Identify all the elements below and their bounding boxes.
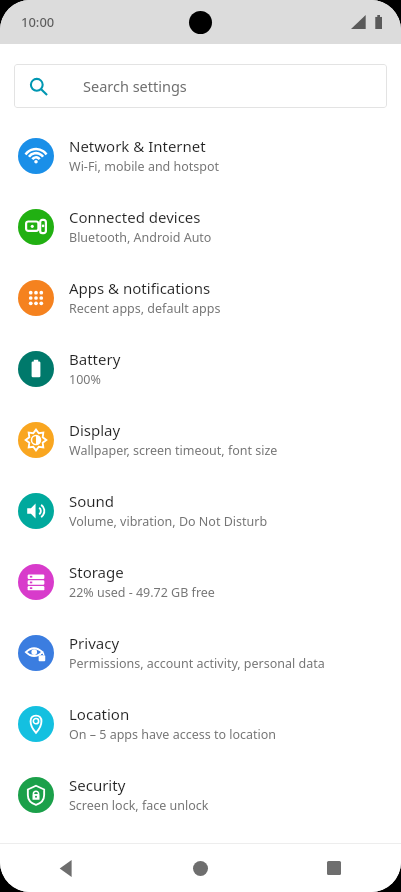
staticText: Storage xyxy=(69,562,124,582)
staticText: Screen lock, face unlock xyxy=(69,797,209,814)
button[interactable]: Back xyxy=(0,844,133,892)
staticText: Display xyxy=(69,420,121,440)
staticText: Privacy xyxy=(69,633,120,653)
staticText: Battery xyxy=(69,349,121,369)
button[interactable]: Sound xyxy=(0,475,401,546)
button[interactable]: Search settings xyxy=(14,64,387,108)
button[interactable]: Home xyxy=(133,844,267,892)
button[interactable]: Connected devices xyxy=(0,191,401,262)
button[interactable]: Network & Internet xyxy=(0,120,401,191)
staticText: Search settings xyxy=(83,76,187,96)
button[interactable]: Display xyxy=(0,404,401,475)
button[interactable]: Security xyxy=(0,759,401,830)
button[interactable]: Battery xyxy=(0,333,401,404)
staticText: Connected devices xyxy=(69,207,201,227)
button[interactable]: Location xyxy=(0,688,401,759)
button[interactable]: Storage xyxy=(0,546,401,617)
staticText: Location xyxy=(69,704,130,724)
staticText: Sound xyxy=(69,491,115,511)
staticText: Recent apps, default apps xyxy=(69,300,221,317)
staticText: Apps & notifications xyxy=(69,278,211,298)
staticText: Bluetooth, Android Auto xyxy=(69,229,212,246)
staticText: Permissions, account activity, personal … xyxy=(69,655,325,672)
staticText: Volume, vibration, Do Not Disturb xyxy=(69,513,268,530)
staticText: 100% xyxy=(69,371,101,388)
button[interactable]: Privacy xyxy=(0,617,401,688)
staticText: Security xyxy=(69,775,126,795)
staticText: 10:00 xyxy=(21,13,55,31)
staticText: Wi-Fi, mobile and hotspot xyxy=(69,158,220,175)
staticText: On – 5 apps have access to location xyxy=(69,726,277,743)
button[interactable]: Apps & notifications xyxy=(0,262,401,333)
staticText: 22% used - 49.72 GB free xyxy=(69,584,215,601)
button[interactable]: Recent apps xyxy=(267,844,401,892)
staticText: Wallpaper, screen timeout, font size xyxy=(69,442,278,459)
staticText: Network & Internet xyxy=(69,136,206,156)
